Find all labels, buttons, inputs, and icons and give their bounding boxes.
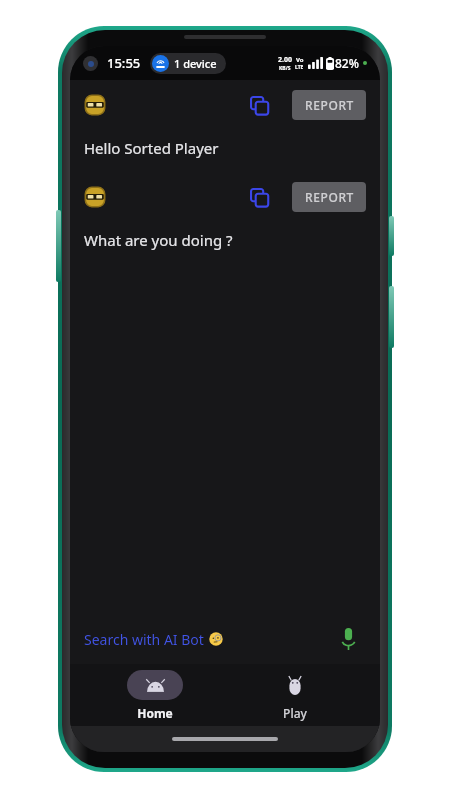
staticText: KB/S xyxy=(279,65,291,72)
button[interactable]: Play xyxy=(240,666,350,725)
button[interactable]: Bot avatar xyxy=(82,184,108,210)
staticText: 2.00 xyxy=(278,55,292,65)
button[interactable]: REPORT xyxy=(292,182,366,212)
staticText: 82% xyxy=(335,55,359,71)
staticText: LTE xyxy=(295,64,304,71)
button[interactable]: Search with AI Bot xyxy=(70,618,380,660)
staticText: Home xyxy=(137,705,173,721)
staticText: What are you doing ? xyxy=(84,230,233,250)
button[interactable]: 1 device xyxy=(150,53,226,74)
button[interactable]: Bot avatar xyxy=(82,92,108,118)
staticText: 1 device xyxy=(174,56,217,71)
button[interactable]: REPORT xyxy=(292,90,366,120)
button[interactable]: Copy xyxy=(242,88,276,122)
staticText: Search with AI Bot xyxy=(84,630,204,649)
button[interactable]: Copy xyxy=(242,180,276,214)
staticText: Vo xyxy=(296,56,304,64)
staticText: 15:55 xyxy=(107,54,141,72)
staticText: Play xyxy=(283,705,307,721)
staticText: Hello Sorted Player xyxy=(84,138,219,158)
button[interactable]: Voice search xyxy=(332,623,364,655)
staticText: REPORT xyxy=(305,97,354,113)
button[interactable]: Home xyxy=(100,666,210,725)
staticText: REPORT xyxy=(305,189,354,205)
